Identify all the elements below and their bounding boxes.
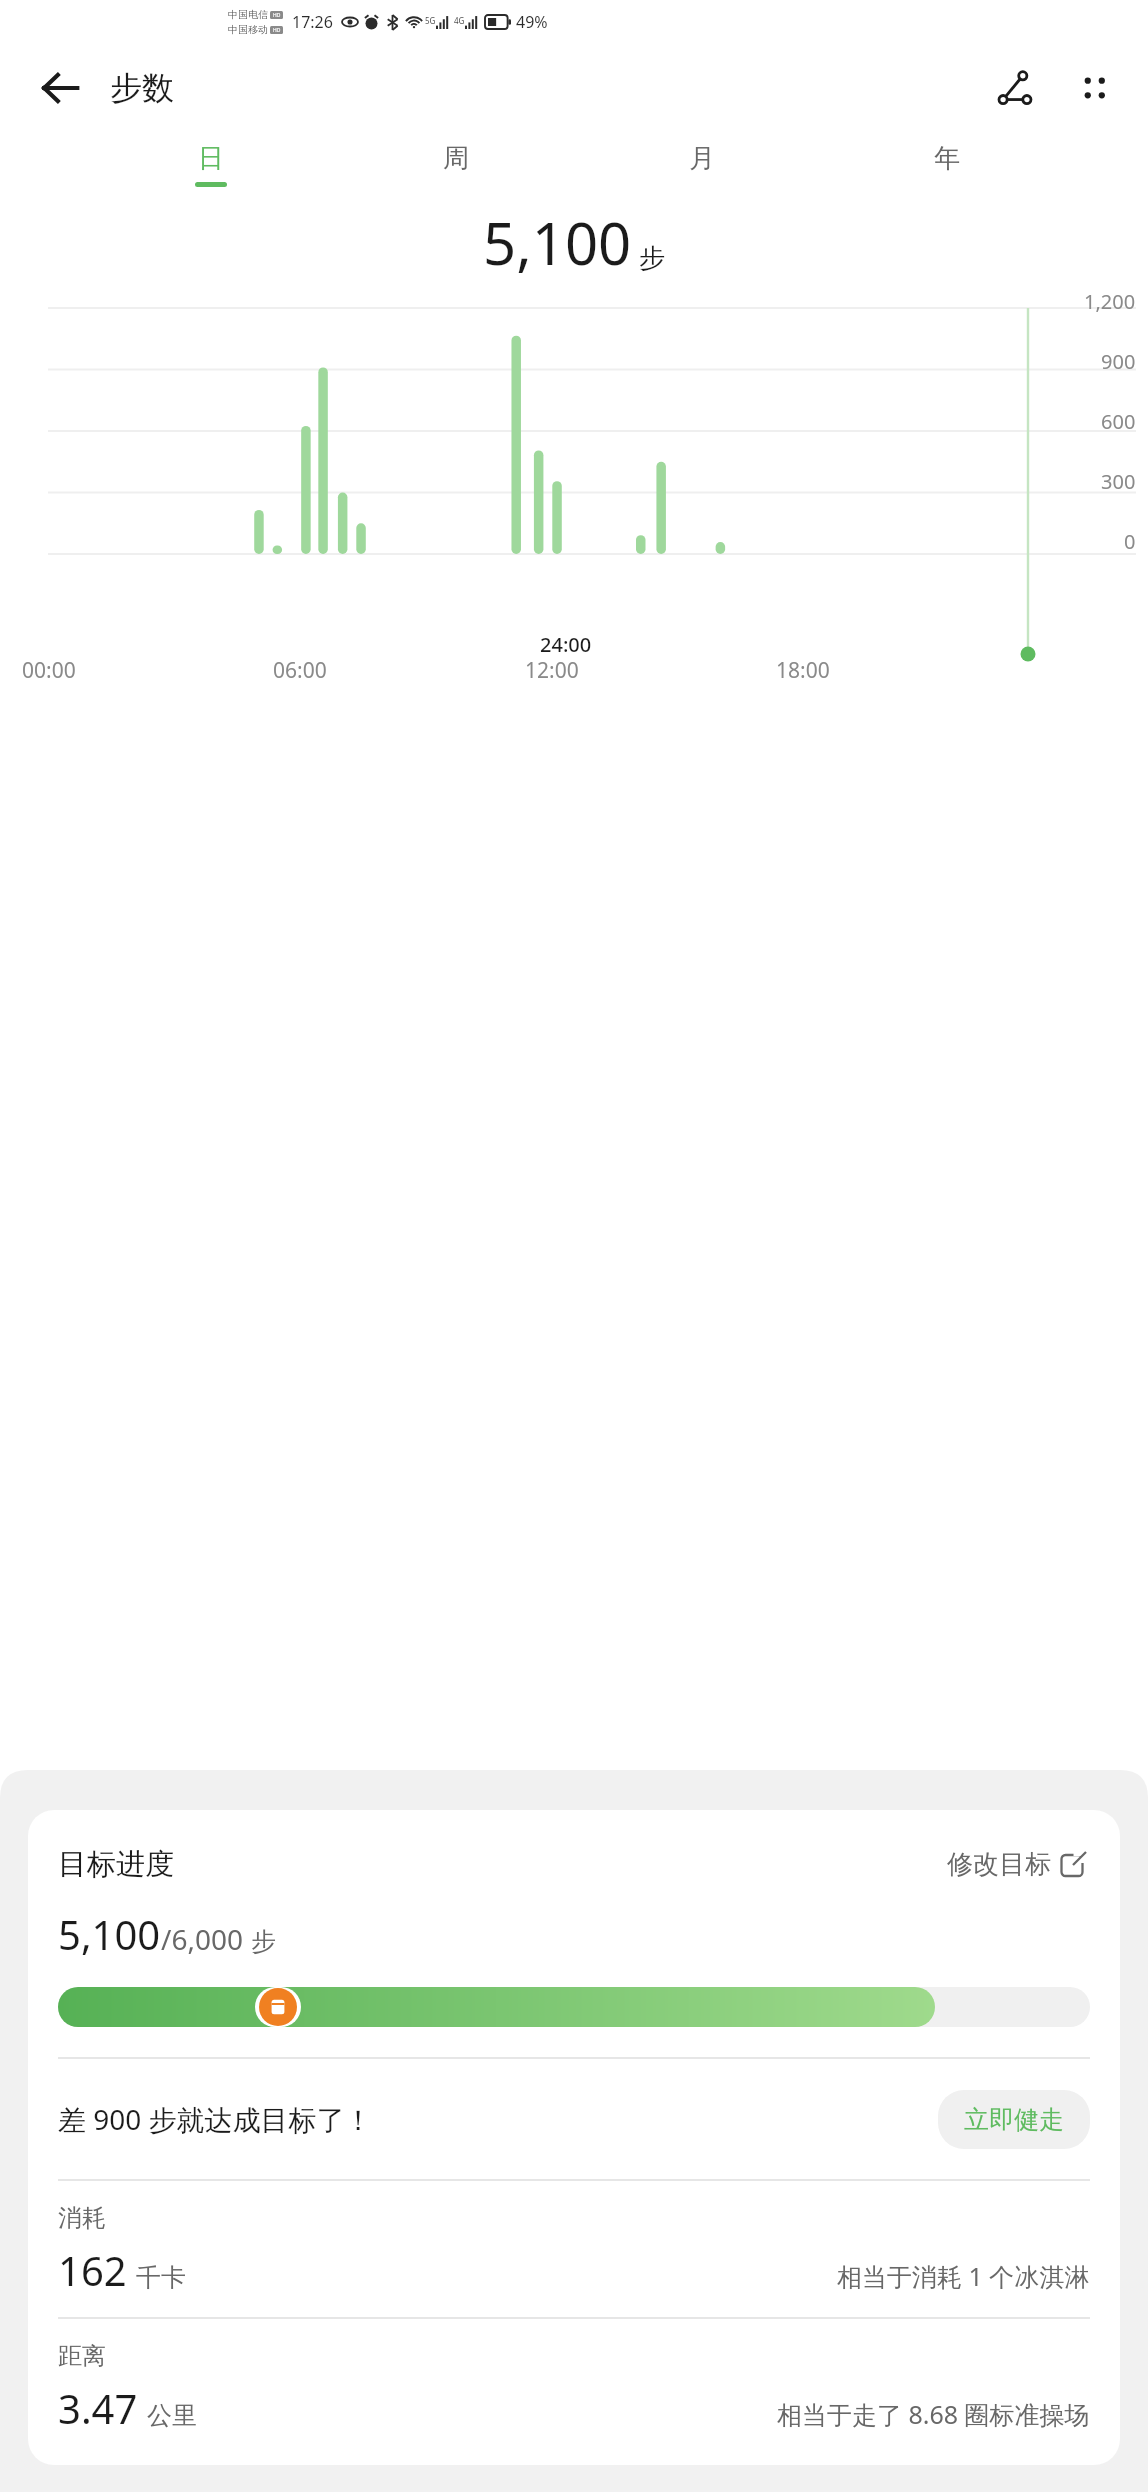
- staticText: 中国电信: [228, 8, 268, 21]
- staticText: /6,000: [161, 1920, 243, 1958]
- staticText: 300: [1101, 468, 1136, 495]
- button[interactable]: 年: [918, 140, 976, 189]
- button[interactable]: 修改目标: [943, 1844, 1090, 1885]
- staticText: 步数: [110, 68, 174, 108]
- staticText: 月: [689, 142, 715, 175]
- staticText: 修改目标: [947, 1848, 1051, 1881]
- staticText: 5G: [425, 15, 436, 26]
- button[interactable]: 分享: [984, 56, 1048, 120]
- staticText: 年: [934, 142, 960, 175]
- staticText: 目标进度: [58, 1846, 174, 1883]
- staticText: 差 900 步就达成目标了！: [58, 2100, 373, 2138]
- button[interactable]: 返回: [28, 56, 92, 120]
- staticText: 0: [1124, 528, 1136, 555]
- staticText: 900: [1101, 348, 1136, 375]
- button[interactable]: 日: [182, 140, 240, 189]
- staticText: HD: [273, 27, 281, 34]
- staticText: 5,100: [58, 1907, 161, 1961]
- button[interactable]: 月: [673, 140, 731, 189]
- staticText: 日: [198, 142, 224, 175]
- staticText: 4G: [454, 15, 465, 26]
- staticText: 5,100: [483, 203, 632, 282]
- button[interactable]: 立即健走: [938, 2090, 1090, 2149]
- staticText: 24:00: [540, 631, 592, 658]
- staticText: 相当于消耗 1 个冰淇淋: [837, 2259, 1090, 2293]
- staticText: 消耗: [58, 2203, 106, 2233]
- staticText: 周: [443, 142, 469, 175]
- staticText: 06:00: [273, 656, 327, 685]
- staticText: 18:00: [776, 656, 830, 685]
- staticText: 千卡: [136, 2262, 186, 2293]
- staticText: 立即健走: [964, 2104, 1064, 2135]
- staticText: 00:00: [22, 656, 76, 685]
- staticText: 12:00: [525, 656, 579, 685]
- staticText: HD: [273, 12, 281, 19]
- staticText: 公里: [147, 2400, 197, 2431]
- staticText: 3.47: [58, 2381, 138, 2435]
- button[interactable]: 周: [427, 140, 485, 189]
- staticText: 1,200: [1084, 288, 1136, 315]
- staticText: 49%: [516, 11, 548, 33]
- button[interactable]: 更多: [1062, 56, 1126, 120]
- staticText: 距离: [58, 2341, 106, 2371]
- staticText: 步: [251, 1926, 276, 1957]
- staticText: 步: [639, 242, 665, 275]
- staticText: 162: [58, 2243, 127, 2297]
- staticText: 相当于走了 8.68 圈标准操场: [777, 2397, 1090, 2431]
- staticText: 600: [1101, 408, 1136, 435]
- staticText: 17:26: [292, 11, 333, 33]
- staticText: 中国移动: [228, 23, 268, 36]
